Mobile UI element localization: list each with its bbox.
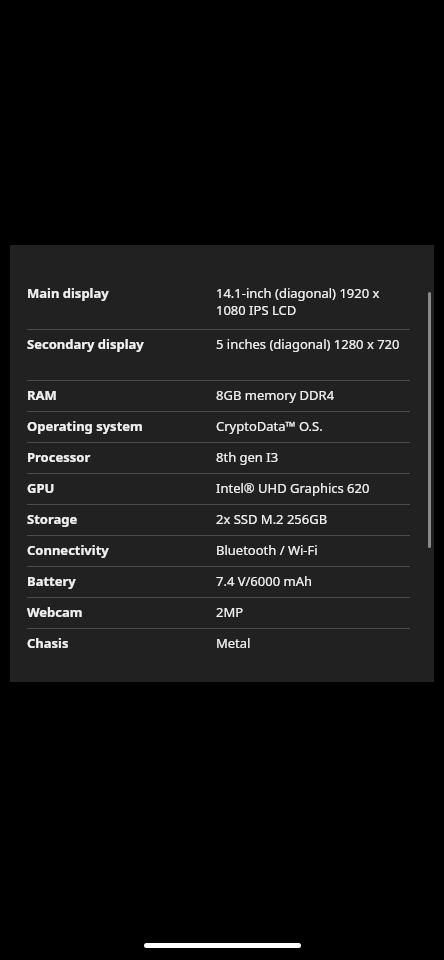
staticText: 8th gen I3 — [216, 448, 410, 466]
button[interactable]: Operating system — [27, 412, 410, 442]
button[interactable]: Chasis — [27, 629, 410, 659]
staticText: Metal — [216, 634, 410, 652]
other: Scroll position — [428, 292, 431, 548]
button[interactable]: Battery — [27, 567, 410, 597]
button[interactable]: Secondary display — [27, 330, 410, 380]
staticText: CryptoData™ O.S. — [216, 417, 410, 435]
staticText: Battery — [27, 572, 216, 590]
staticText: 5 inches (diagonal) 1280 x 720 — [216, 335, 410, 353]
button[interactable]: Main display — [27, 279, 410, 329]
staticText: Main display — [27, 284, 216, 302]
staticText: 2x SSD M.2 256GB — [216, 510, 410, 528]
staticText: Connectivity — [27, 541, 216, 559]
button[interactable]: RAM — [27, 381, 410, 411]
button[interactable]: Home indicator — [144, 943, 301, 948]
staticText: Intel® UHD Graphics 620 — [216, 479, 410, 497]
staticText: Secondary display — [27, 335, 216, 353]
staticText: RAM — [27, 386, 216, 404]
button[interactable]: GPU — [27, 474, 410, 504]
staticText: GPU — [27, 479, 216, 497]
button[interactable]: Processor — [27, 443, 410, 473]
staticText: Webcam — [27, 603, 216, 621]
staticText: Bluetooth / Wi-Fi — [216, 541, 410, 559]
staticText: 14.1-inch (diagonal) 1920 x 1080 IPS LCD — [216, 284, 410, 319]
button[interactable]: Webcam — [27, 598, 410, 628]
button[interactable]: Connectivity — [27, 536, 410, 566]
button[interactable]: Storage — [27, 505, 410, 535]
staticText: 7.4 V/6000 mAh — [216, 572, 410, 590]
staticText: 8GB memory DDR4 — [216, 386, 410, 404]
staticText: 2MP — [216, 603, 410, 621]
staticText: Operating system — [27, 417, 216, 435]
staticText: Chasis — [27, 634, 216, 652]
staticText: Storage — [27, 510, 216, 528]
staticText: Processor — [27, 448, 216, 466]
